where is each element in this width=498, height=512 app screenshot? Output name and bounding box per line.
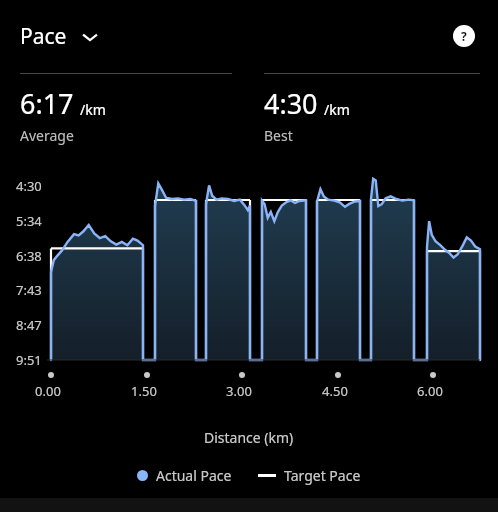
button[interactable]: 4:30 bbox=[264, 73, 480, 145]
staticText: Best bbox=[264, 126, 293, 145]
staticText: 5:34 bbox=[16, 212, 42, 230]
staticText: 4:30 bbox=[16, 177, 42, 195]
staticText: ? bbox=[461, 28, 467, 44]
staticText: 7:43 bbox=[16, 281, 42, 299]
button[interactable]: Pace bbox=[20, 22, 105, 51]
staticText: Average bbox=[20, 126, 74, 145]
staticText: 4.50 bbox=[322, 382, 348, 400]
staticText: Distance (km) bbox=[204, 428, 294, 447]
staticText: 3.00 bbox=[226, 382, 252, 400]
staticText: Pace bbox=[20, 22, 67, 51]
staticText: 6.00 bbox=[417, 382, 443, 400]
staticText: /km bbox=[324, 100, 350, 119]
staticText: 9:51 bbox=[16, 351, 42, 369]
staticText: 0.00 bbox=[35, 382, 61, 400]
button[interactable]: Help bbox=[451, 23, 477, 49]
staticText: 8:47 bbox=[16, 316, 42, 334]
staticText: /km bbox=[80, 100, 106, 119]
staticText: 1.50 bbox=[131, 382, 157, 400]
button[interactable]: Target Pace bbox=[258, 466, 361, 485]
staticText: Actual Pace bbox=[156, 466, 232, 485]
button[interactable]: 6:17 bbox=[20, 73, 232, 145]
staticText: Target Pace bbox=[284, 466, 361, 485]
staticText: 6:17 bbox=[20, 85, 74, 122]
staticText: 4:30 bbox=[264, 85, 318, 122]
button[interactable]: Actual Pace bbox=[137, 466, 232, 485]
staticText: 6:38 bbox=[16, 247, 42, 265]
